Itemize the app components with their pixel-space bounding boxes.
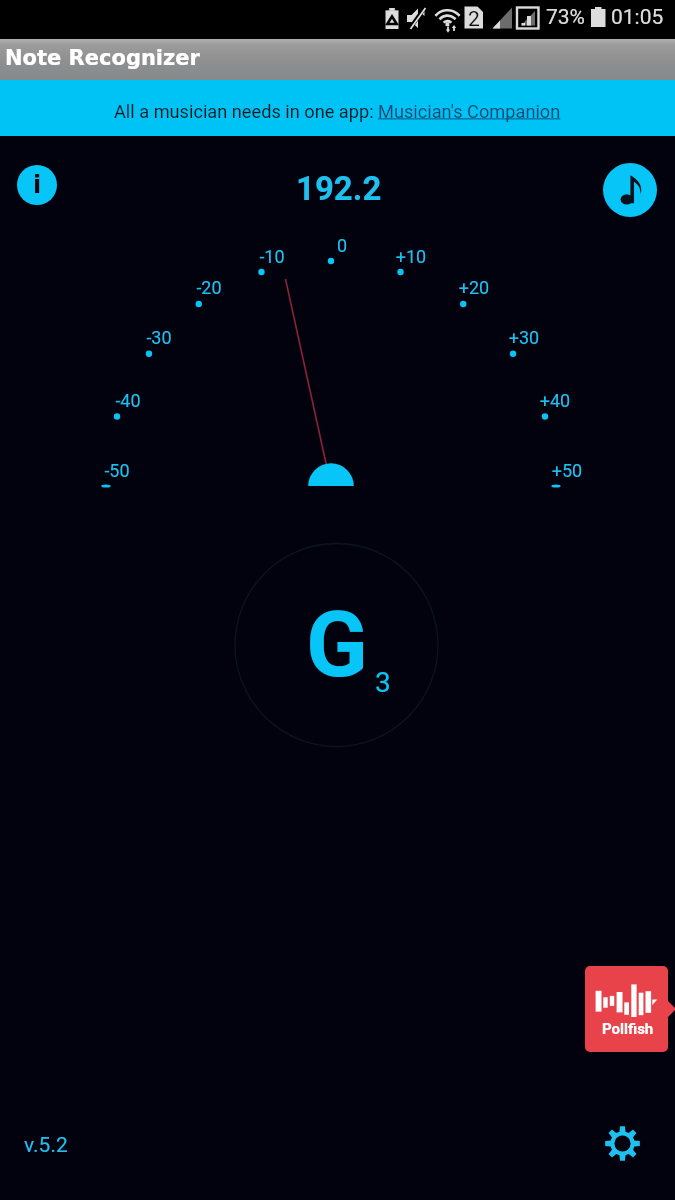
button[interactable]: Info bbox=[17, 165, 57, 205]
staticText: 2 bbox=[468, 7, 480, 32]
staticText: v.5.2 bbox=[24, 1133, 68, 1158]
staticText: All a musician needs in one app: Musicia… bbox=[114, 101, 561, 122]
staticText: 0 bbox=[302, 235, 382, 256]
staticText: 73% bbox=[546, 5, 585, 30]
staticText: +50 bbox=[527, 460, 607, 481]
staticText: +30 bbox=[484, 327, 564, 348]
staticText: 192.2 bbox=[296, 169, 382, 208]
staticText: +20 bbox=[434, 277, 514, 298]
staticText: -30 bbox=[119, 327, 199, 348]
staticText: -40 bbox=[88, 390, 168, 411]
staticText: +10 bbox=[371, 246, 451, 267]
staticText: Note Recognizer bbox=[5, 46, 200, 70]
staticText: -10 bbox=[232, 246, 312, 267]
staticText: G bbox=[306, 592, 368, 699]
button[interactable]: Note list bbox=[603, 163, 657, 217]
staticText: -50 bbox=[77, 460, 157, 481]
button[interactable]: Settings bbox=[605, 1126, 640, 1161]
button[interactable]: All a musician needs in one app: Musicia… bbox=[0, 80, 675, 136]
staticText: Pollfish bbox=[602, 1020, 654, 1038]
staticText: i bbox=[33, 171, 42, 199]
staticText: 3 bbox=[375, 666, 391, 699]
staticText: 01:05 bbox=[611, 5, 664, 30]
button[interactable]: Pollfish survey bbox=[585, 966, 668, 1052]
staticText: +40 bbox=[515, 390, 595, 411]
staticText: -20 bbox=[169, 277, 249, 298]
